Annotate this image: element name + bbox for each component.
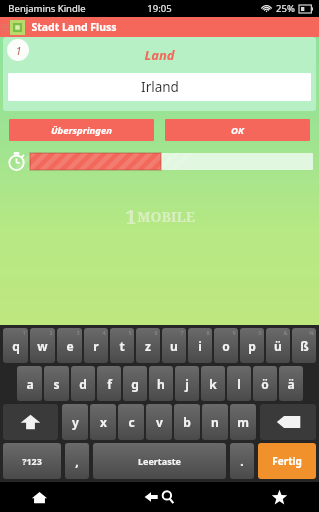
button[interactable]: h [149, 366, 173, 401]
button[interactable]: Backspace [260, 404, 316, 440]
staticText: w [37, 338, 48, 354]
button[interactable]: App icon [10, 20, 25, 35]
button[interactable]: Home [0, 482, 79, 512]
staticText: . [240, 453, 244, 469]
button[interactable]: Search [159, 482, 239, 512]
staticText: Stadt Land Fluss [31, 20, 117, 34]
staticText: h [157, 376, 165, 392]
button[interactable]: ü [266, 328, 290, 363]
staticText: n [211, 414, 219, 430]
staticText: 2 [49, 329, 53, 336]
button[interactable]: z [136, 328, 160, 363]
staticText: 1 [125, 203, 137, 230]
button[interactable]: s [44, 366, 69, 401]
staticText: Land [144, 46, 175, 64]
button[interactable]: d [71, 366, 95, 401]
button[interactable]: j [175, 366, 199, 401]
staticText: 7 [180, 329, 184, 336]
staticText: p [248, 338, 256, 354]
button[interactable]: w [30, 328, 55, 363]
staticText: r [93, 338, 99, 354]
button[interactable]: n [202, 404, 228, 440]
staticText: 19:05 [147, 2, 172, 15]
staticText: v [156, 414, 163, 430]
staticText: s [53, 376, 60, 392]
button[interactable]: q [3, 328, 28, 363]
button[interactable]: t [110, 328, 134, 363]
button[interactable]: u [162, 328, 186, 363]
staticText: q [12, 338, 20, 354]
staticText: 5 [128, 329, 132, 336]
button[interactable]: g [123, 366, 147, 401]
button[interactable]: a [17, 366, 42, 401]
staticText: f [107, 376, 112, 392]
staticText: u [170, 338, 178, 354]
staticText: & [283, 329, 288, 336]
staticText: 9 [232, 329, 236, 336]
staticText: Irland [141, 78, 179, 96]
button[interactable]: p [240, 328, 264, 363]
button[interactable]: Leertaste [93, 443, 226, 479]
staticText: 4 [102, 329, 106, 336]
button[interactable]: Favorites [239, 482, 319, 512]
button[interactable]: m [230, 404, 256, 440]
button[interactable]: Back [79, 482, 159, 512]
staticText: t [119, 338, 125, 354]
staticText: i [198, 338, 202, 354]
button[interactable]: r [84, 328, 108, 363]
button[interactable]: l [227, 366, 251, 401]
staticText: Benjamins Kindle [8, 2, 86, 15]
staticText: % [309, 329, 314, 336]
staticText: 25% [276, 2, 295, 15]
staticText: ?123 [22, 455, 42, 467]
staticText: j [185, 376, 189, 392]
staticText: g [131, 376, 139, 392]
button[interactable]: Shift [3, 404, 58, 440]
staticText: MOBILE [137, 207, 195, 226]
button[interactable]: k [201, 366, 225, 401]
button[interactable]: ?123 [3, 443, 61, 479]
button[interactable]: b [174, 404, 200, 440]
staticText: 8 [206, 329, 210, 336]
button[interactable]: ö [253, 366, 277, 401]
button[interactable]: y [62, 404, 88, 440]
button[interactable]: ä [279, 366, 303, 401]
button[interactable]: . [230, 443, 254, 479]
staticText: Fertig [272, 454, 302, 468]
staticText: d [79, 376, 87, 392]
staticText: 3 [76, 329, 80, 336]
staticText: ö [261, 376, 269, 392]
staticText: o [222, 338, 230, 354]
button[interactable]: c [118, 404, 144, 440]
button[interactable]: x [90, 404, 116, 440]
button[interactable]: e [57, 328, 82, 363]
staticText: m [237, 414, 249, 430]
staticText: e [66, 338, 74, 354]
staticText: y [72, 414, 79, 430]
other: Timer [7, 152, 26, 171]
button[interactable]: , [65, 443, 89, 479]
button[interactable]: i [188, 328, 212, 363]
staticText: ä [287, 376, 295, 392]
staticText: ß [300, 338, 309, 354]
staticText: 0 [258, 329, 262, 336]
button[interactable]: v [146, 404, 172, 440]
staticText: 1 [22, 329, 26, 336]
button[interactable]: ß [292, 328, 316, 363]
staticText: a [26, 376, 34, 392]
staticText: z [145, 338, 151, 354]
button[interactable]: Fertig [258, 443, 316, 479]
staticText: Überspringen [51, 124, 112, 137]
button[interactable]: Menu [0, 17, 10, 37]
staticText: 1 [15, 43, 22, 58]
button[interactable]: o [214, 328, 238, 363]
staticText: OK [231, 124, 244, 137]
staticText: , [75, 453, 79, 469]
staticText: Leertaste [138, 455, 181, 467]
staticText: x [100, 414, 107, 430]
button[interactable]: OK [165, 119, 310, 141]
button[interactable]: Überspringen [9, 119, 154, 141]
staticText: 6 [154, 329, 158, 336]
button[interactable]: f [97, 366, 121, 401]
button[interactable]: Irland [8, 73, 311, 101]
